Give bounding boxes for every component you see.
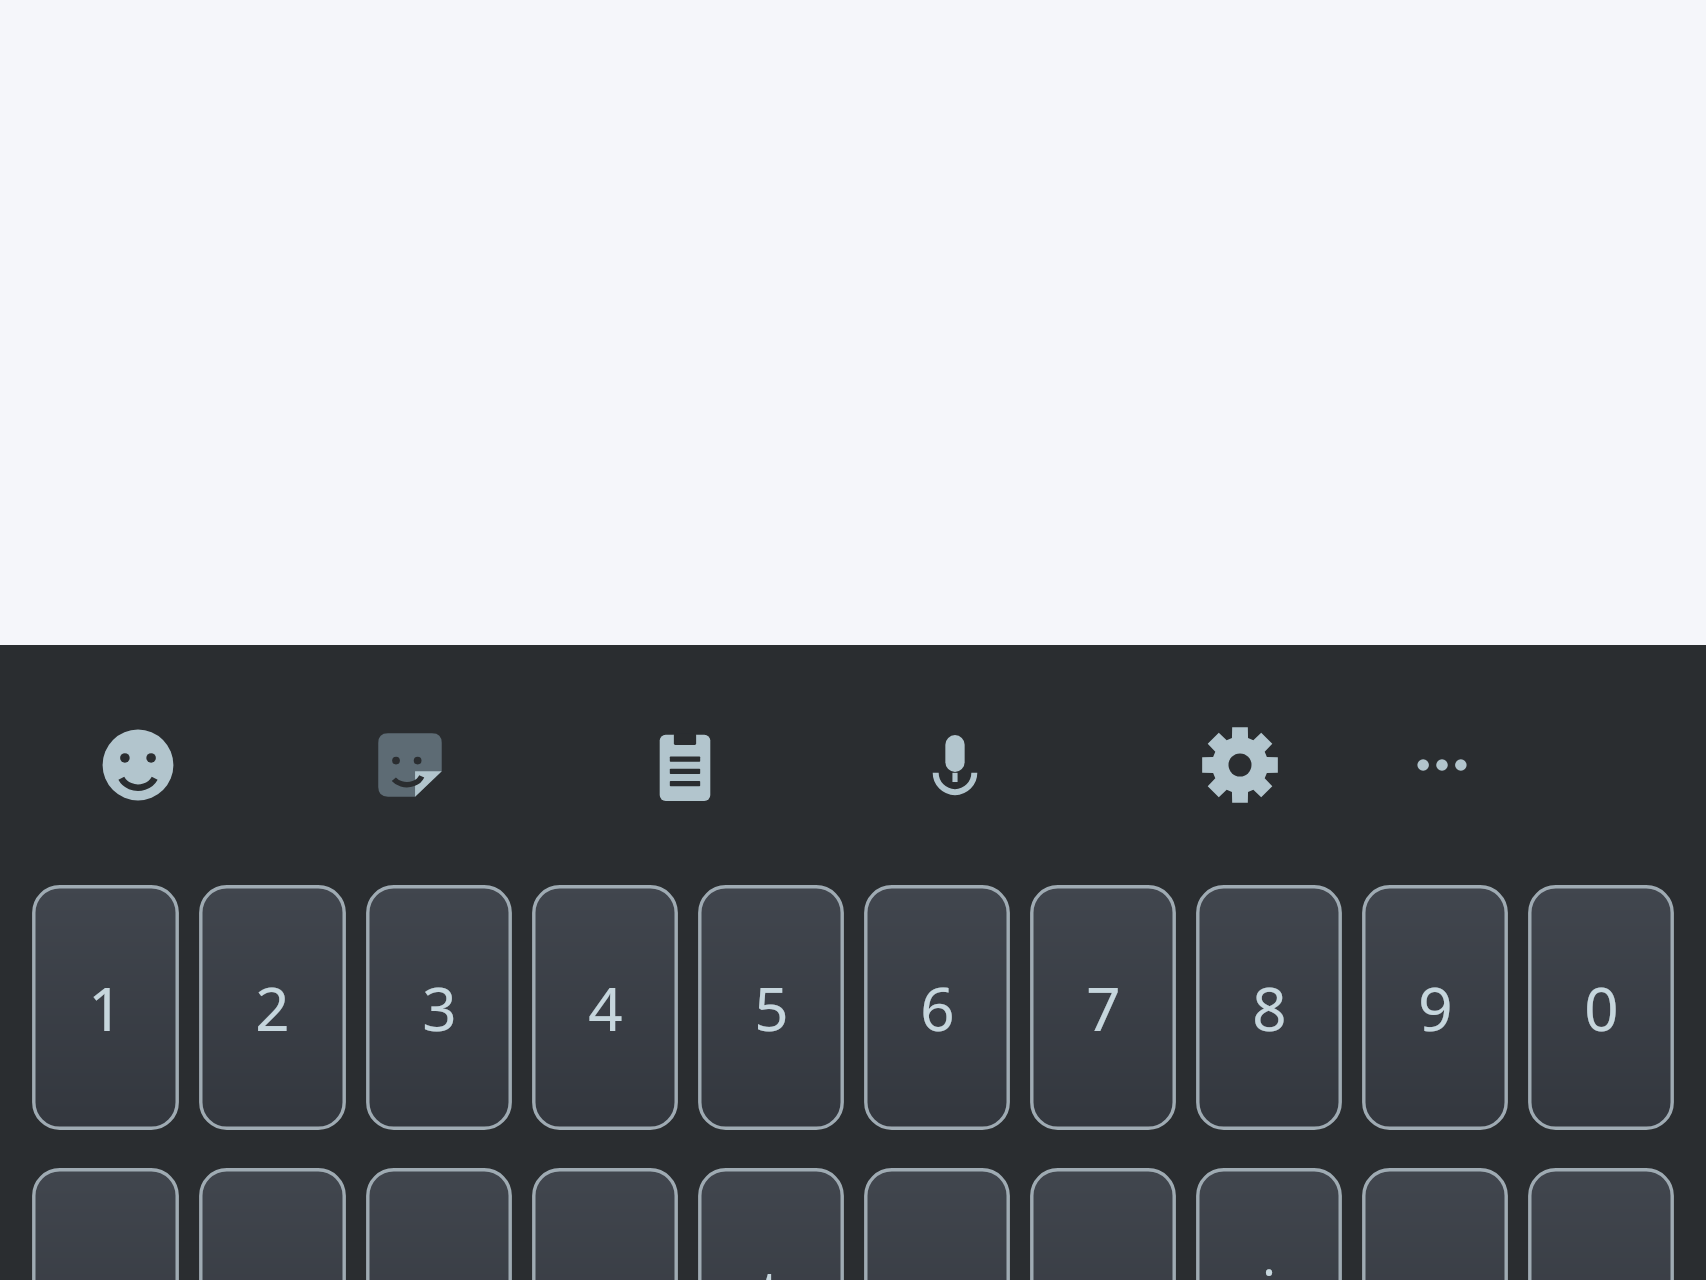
button[interactable]: t bbox=[698, 1168, 844, 1280]
button[interactable]: p bbox=[1528, 1168, 1674, 1280]
button[interactable]: Stickers bbox=[364, 719, 456, 811]
button[interactable]: 7 bbox=[1030, 885, 1176, 1130]
button[interactable]: 0 bbox=[1528, 885, 1674, 1130]
button[interactable]: 4 bbox=[532, 885, 678, 1130]
staticText: 7 bbox=[1086, 967, 1121, 1049]
staticText: 0 bbox=[1584, 967, 1619, 1049]
button[interactable]: More options bbox=[1396, 719, 1488, 811]
button[interactable]: w bbox=[199, 1168, 346, 1280]
button[interactable]: y bbox=[864, 1168, 1010, 1280]
button[interactable]: 1 bbox=[32, 885, 179, 1130]
staticText: 8 bbox=[1252, 967, 1287, 1049]
button[interactable]: o bbox=[1362, 1168, 1508, 1280]
staticText: 1 bbox=[88, 967, 123, 1049]
button[interactable]: Emoji bbox=[92, 719, 184, 811]
staticText: t bbox=[760, 1250, 782, 1280]
button[interactable]: u bbox=[1030, 1168, 1176, 1280]
button[interactable]: Clipboard bbox=[639, 719, 731, 811]
staticText: 2 bbox=[255, 967, 290, 1049]
button[interactable]: r bbox=[532, 1168, 678, 1280]
button[interactable]: i bbox=[1196, 1168, 1342, 1280]
staticText: 3 bbox=[422, 967, 457, 1049]
staticText: 5 bbox=[754, 967, 789, 1049]
button[interactable]: 5 bbox=[698, 885, 844, 1130]
button[interactable]: e bbox=[366, 1168, 512, 1280]
staticText: i bbox=[1261, 1250, 1277, 1280]
button[interactable]: 3 bbox=[366, 885, 512, 1130]
staticText: 6 bbox=[920, 967, 955, 1049]
button[interactable]: 6 bbox=[864, 885, 1010, 1130]
button[interactable]: Voice input bbox=[909, 719, 1001, 811]
button[interactable]: 2 bbox=[199, 885, 346, 1130]
button[interactable]: 8 bbox=[1196, 885, 1342, 1130]
button[interactable]: q bbox=[32, 1168, 179, 1280]
staticText: 4 bbox=[588, 967, 623, 1049]
button[interactable]: Settings bbox=[1194, 719, 1286, 811]
staticText: 9 bbox=[1418, 967, 1453, 1049]
button[interactable]: 9 bbox=[1362, 885, 1508, 1130]
